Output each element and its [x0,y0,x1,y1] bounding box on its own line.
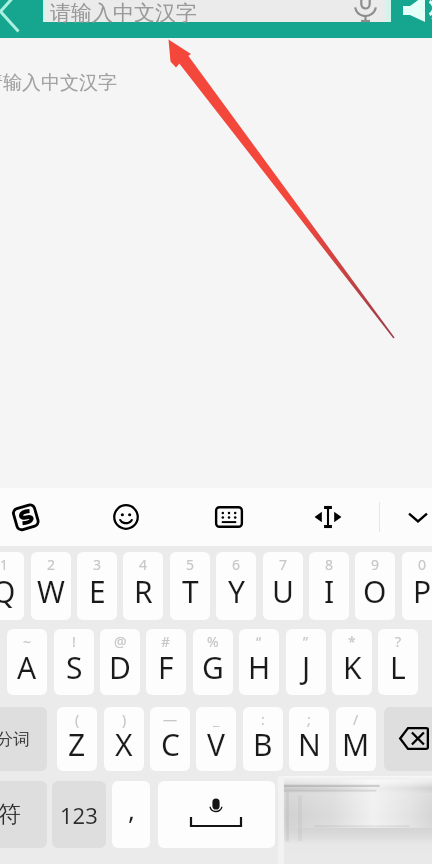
button[interactable]: 4 [123,552,163,620]
button[interactable]: “ [239,629,279,695]
staticText: L [390,647,406,688]
staticText: 请输入中文汉字 [0,71,117,95]
staticText: M [342,724,370,765]
button[interactable]: ? [378,629,418,695]
button[interactable]: ” [286,629,326,695]
staticText: 123 [60,800,98,830]
staticText: W [37,571,65,612]
staticText: * [348,632,356,651]
button[interactable]: ) [104,707,144,771]
staticText: 8 [325,555,334,574]
button[interactable]: 9 [355,552,395,620]
button[interactable]: Voice input [354,0,378,28]
staticText: D [109,647,131,688]
button[interactable]: 5 [170,552,210,620]
button[interactable]: ! [54,629,94,695]
button[interactable]: Speaker [397,0,432,32]
staticText: J [302,647,311,688]
button[interactable]: ( [57,707,97,771]
staticText: F [158,647,174,688]
staticText: ( [75,710,80,729]
button[interactable]: _ [196,707,236,771]
button[interactable]: Sogou [12,503,40,531]
staticText: 请输入中文汉字 [50,0,197,26]
button[interactable]: 123 [52,781,106,848]
button[interactable]: 8 [309,552,349,620]
staticText: ! [72,632,76,651]
staticText: B [253,724,273,765]
button[interactable]: % [193,629,233,695]
button[interactable]: Emoji [112,503,140,531]
staticText: G [202,647,224,688]
staticText: / [353,710,359,729]
staticText: A [17,647,37,688]
button[interactable]: 7 [263,552,303,620]
staticText: I [324,571,335,612]
staticText: 0 [418,555,427,574]
staticText: @ [114,632,127,651]
button[interactable]: 6 [216,552,256,620]
staticText: N [298,724,321,765]
button[interactable]: 分词 [0,707,47,771]
staticText: _ [213,710,220,729]
staticText: O [363,571,387,612]
staticText: : [261,710,265,729]
staticText: # [161,632,171,651]
staticText: 1 [0,555,9,574]
staticText: T [182,571,199,612]
button[interactable]: # [146,629,186,695]
staticText: ; [307,710,311,729]
staticText: , [128,792,135,827]
button[interactable]: , [112,781,150,848]
button[interactable]: 符 [0,781,47,848]
staticText: 分词 [0,729,30,750]
staticText: 5 [186,555,195,574]
staticText: % [207,632,219,651]
staticText: 3 [93,555,102,574]
staticText: V [207,724,225,765]
button[interactable]: * [332,629,372,695]
button[interactable]: 请输入中文汉字 [43,0,391,22]
button[interactable]: — [150,707,190,771]
button[interactable]: Back [0,0,30,38]
button[interactable]: ~ [7,629,47,695]
staticText: Z [68,724,86,765]
button[interactable]: @ [100,629,140,695]
button[interactable]: 2 [31,552,71,620]
staticText: Y [228,571,245,612]
staticText: U [272,571,294,612]
staticText: E [89,571,106,612]
staticText: ) [122,710,127,729]
button[interactable]: 1 [0,552,24,620]
button[interactable]: 3 [77,552,117,620]
staticText: S [66,647,83,688]
button[interactable]: / [336,707,376,771]
staticText: “ [256,632,262,651]
staticText: C [161,724,180,765]
staticText: R [134,571,153,612]
button[interactable]: 0 [402,552,432,620]
staticText: ” [303,632,309,651]
staticText: 7 [279,555,288,574]
staticText: H [248,647,271,688]
staticText: P [413,571,432,612]
button[interactable]: Space [158,781,275,848]
staticText: 2 [47,555,56,574]
staticText: — [163,710,177,729]
button[interactable]: Backspace [384,707,432,771]
button[interactable]: ; [289,707,329,771]
staticText: 符 [0,800,21,829]
button[interactable]: Hide keyboard [404,503,432,531]
staticText: ~ [23,632,32,651]
button[interactable]: Move cursor [314,503,342,531]
staticText: X [115,724,133,765]
staticText: Q [0,571,16,612]
button[interactable]: Keyboard layout [215,503,243,531]
staticText: 4 [139,555,148,574]
staticText: K [343,647,362,688]
staticText: ? [395,632,402,651]
staticText: 9 [371,555,380,574]
button[interactable]: : [243,707,283,771]
staticText: 6 [232,555,241,574]
